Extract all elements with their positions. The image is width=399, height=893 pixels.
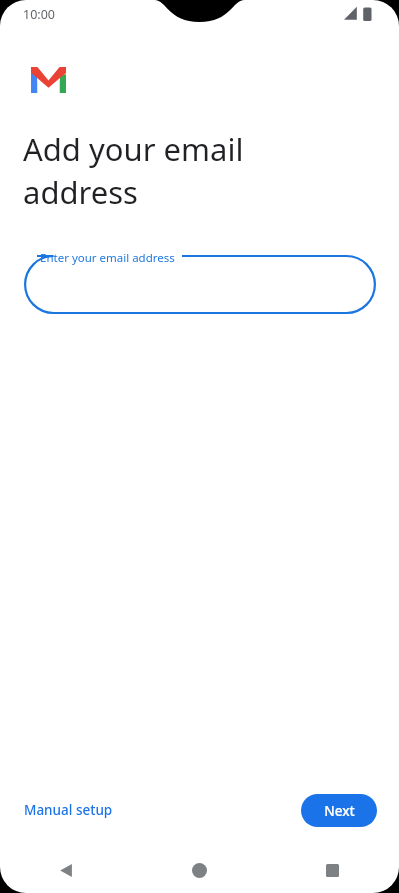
button[interactable]: Next <box>301 794 377 827</box>
button[interactable]: Manual setup <box>23 793 114 827</box>
staticText: Enter your email address <box>40 250 175 266</box>
staticText: Add your email address <box>23 128 244 213</box>
staticText: Next <box>324 802 355 820</box>
button[interactable]: Recent apps <box>266 848 399 893</box>
staticText: 10:00 <box>23 6 55 23</box>
button[interactable]: Back <box>0 848 133 893</box>
button[interactable]: Home <box>133 848 266 893</box>
button[interactable]: Enter your email address <box>24 250 376 320</box>
staticText: Manual setup <box>24 801 113 819</box>
